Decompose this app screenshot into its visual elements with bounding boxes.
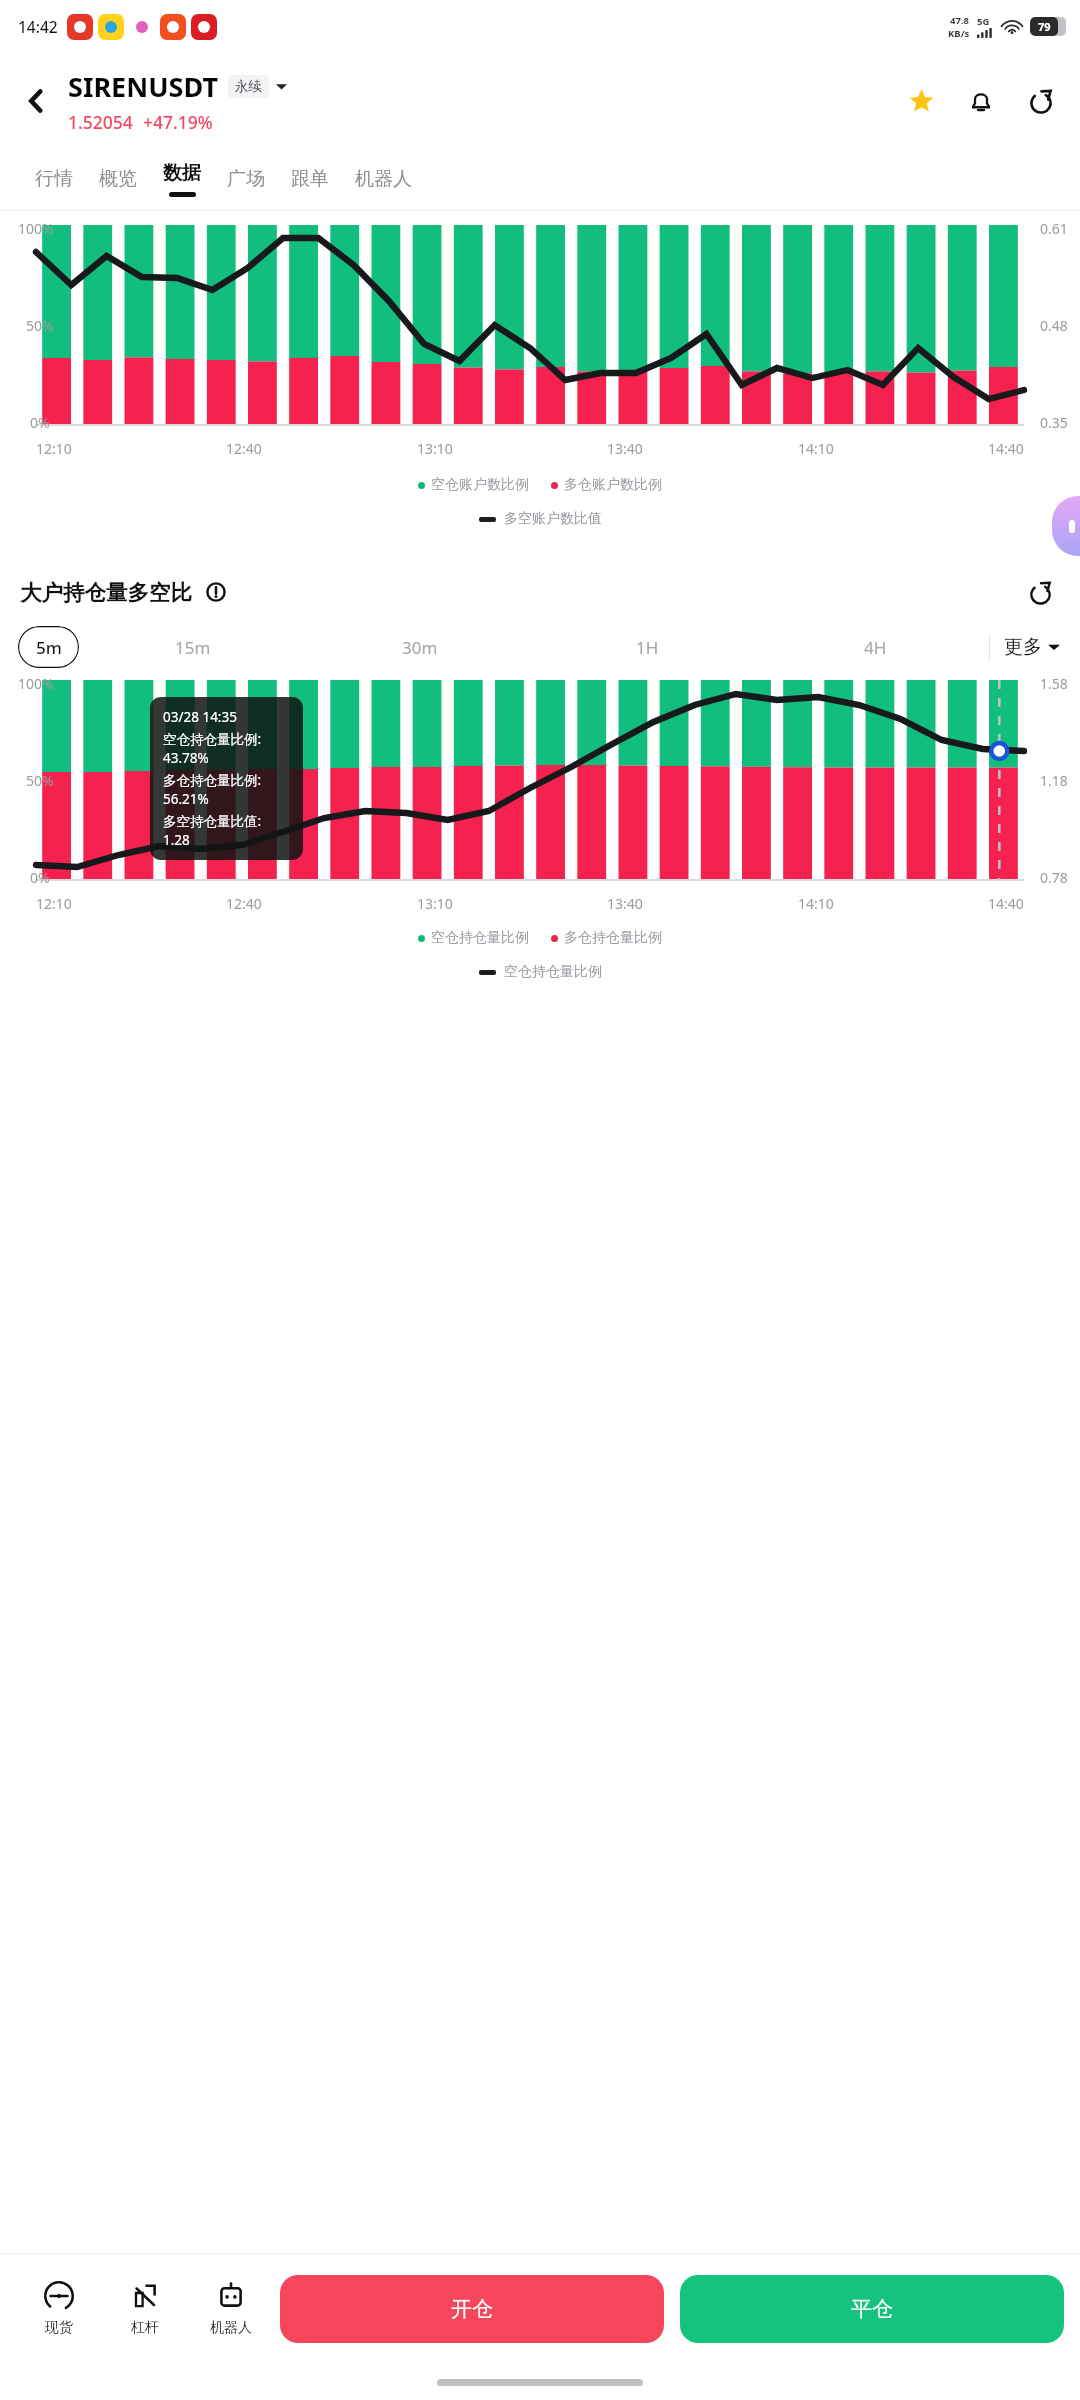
button[interactable]: Share — [1018, 78, 1064, 124]
staticText: 多空账户数比值 — [504, 510, 602, 528]
staticText: 跟单 — [291, 167, 329, 191]
staticText: 多仓账户数比例 — [564, 476, 662, 494]
button[interactable]: 现货 — [16, 2281, 102, 2337]
staticText: 0% — [30, 413, 50, 432]
staticText: 30m — [402, 636, 438, 659]
button[interactable]: Info — [200, 576, 232, 608]
staticText: 14:42 — [18, 16, 58, 37]
staticText: 机器人 — [355, 167, 412, 191]
staticText: 空仓持仓量比例: 43.78% — [163, 730, 290, 767]
staticText: 12:10 — [36, 894, 72, 913]
staticText: 79 — [1038, 19, 1051, 34]
staticText: 100% — [18, 219, 54, 238]
staticText: KB/s — [948, 27, 970, 40]
button[interactable]: 4H — [761, 626, 989, 668]
staticText: 多空持仓量比值: 1.28 — [163, 812, 290, 849]
staticText: 15m — [175, 636, 211, 659]
staticText: 50% — [26, 316, 54, 335]
staticText: 13:40 — [607, 439, 643, 458]
staticText: 多仓持仓量比例 — [564, 929, 662, 947]
staticText: 永续 — [235, 78, 262, 95]
staticText: 更多 — [1004, 635, 1042, 659]
staticText: 12:40 — [226, 439, 262, 458]
staticText: 多仓持仓量比例: 56.21% — [163, 771, 290, 808]
button[interactable]: 5m — [18, 626, 79, 668]
staticText: 0% — [30, 868, 50, 887]
button[interactable]: 平仓 — [680, 2275, 1064, 2343]
button[interactable]: Favorite — [898, 78, 944, 124]
button[interactable]: 30m — [306, 626, 533, 668]
staticText: 13:40 — [607, 894, 643, 913]
button[interactable]: 数据 — [150, 148, 214, 210]
staticText: 空仓持仓量比例 — [431, 929, 529, 947]
button[interactable]: 行情 — [22, 148, 86, 210]
staticText: 1H — [636, 636, 659, 659]
button[interactable]: Assistant — [1052, 496, 1080, 556]
staticText: 大户持仓量多空比 — [20, 579, 192, 606]
staticText: 现货 — [45, 2319, 73, 2337]
staticText: 100% — [18, 674, 54, 693]
staticText: 14:40 — [988, 439, 1024, 458]
staticText: 开仓 — [451, 2296, 493, 2322]
staticText: 概览 — [99, 167, 137, 191]
button[interactable]: 机器人 — [342, 148, 425, 210]
staticText: 12:10 — [36, 439, 72, 458]
staticText: 14:10 — [798, 439, 834, 458]
staticText: 14:10 — [798, 894, 834, 913]
staticText: 03/28 14:35 — [163, 708, 237, 726]
staticText: 1.52054 — [68, 110, 133, 134]
button[interactable]: 永续 — [228, 75, 269, 98]
staticText: 0.48 — [1040, 316, 1068, 335]
button[interactable]: 跟单 — [278, 148, 342, 210]
button[interactable]: 杠杆 — [102, 2281, 188, 2337]
button[interactable]: 1H — [533, 626, 761, 668]
button[interactable]: 15m — [79, 626, 306, 668]
staticText: 13:10 — [417, 439, 453, 458]
staticText: 4H — [864, 636, 887, 659]
staticText: 0.61 — [1040, 219, 1068, 238]
button[interactable]: 更多 — [990, 635, 1062, 659]
staticText: 5m — [36, 636, 62, 659]
staticText: 平仓 — [851, 2296, 893, 2322]
staticText: 0.78 — [1040, 868, 1068, 887]
staticText: 杠杆 — [131, 2319, 159, 2337]
button[interactable]: 机器人 — [188, 2281, 274, 2337]
button[interactable]: 概览 — [86, 148, 150, 210]
staticText: 数据 — [163, 161, 201, 185]
staticText: 14:40 — [988, 894, 1024, 913]
staticText: 0.35 — [1040, 413, 1068, 432]
button[interactable]: Back — [8, 73, 64, 129]
staticText: 1.58 — [1040, 674, 1068, 693]
button[interactable]: 广场 — [214, 148, 278, 210]
staticText: 机器人 — [210, 2319, 252, 2337]
staticText: 空仓账户数比例 — [431, 476, 529, 494]
staticText: 47.8 — [950, 14, 969, 27]
button[interactable]: 开仓 — [280, 2275, 664, 2343]
button[interactable]: Alerts — [958, 78, 1004, 124]
staticText: 5G — [977, 15, 990, 28]
staticText: 行情 — [35, 167, 73, 191]
staticText: 1.18 — [1040, 771, 1068, 790]
staticText: 13:10 — [417, 894, 453, 913]
staticText: 空仓持仓量比例 — [504, 963, 602, 981]
staticText: +47.19% — [143, 110, 213, 134]
staticText: 广场 — [227, 167, 265, 191]
staticText: 12:40 — [226, 894, 262, 913]
button[interactable]: Share chart — [1020, 572, 1060, 612]
staticText: SIRENUSDT — [68, 68, 218, 105]
staticText: 50% — [26, 771, 54, 790]
